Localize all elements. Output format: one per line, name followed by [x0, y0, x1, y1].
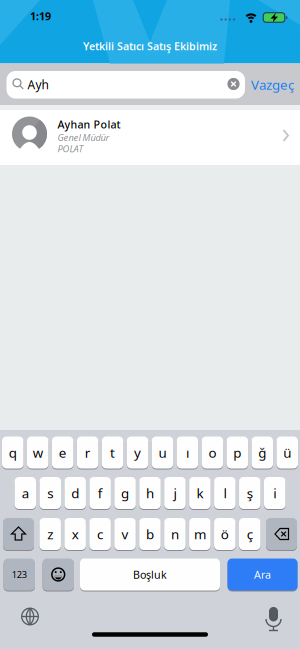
staticText: c: [97, 525, 103, 543]
button[interactable]: q: [2, 436, 24, 469]
button[interactable]: n: [164, 517, 186, 550]
button[interactable]: f: [89, 476, 111, 509]
staticText: ı: [186, 444, 189, 461]
staticText: r: [85, 444, 91, 461]
staticText: Vazgeç: [251, 76, 294, 93]
staticText: Yetkili Satıcı Satış Ekibimiz: [83, 39, 217, 53]
button[interactable]: x: [64, 517, 86, 550]
staticText: u: [158, 444, 166, 461]
button[interactable]: b: [139, 517, 161, 550]
button[interactable]: j: [164, 476, 186, 509]
staticText: n: [171, 525, 179, 543]
staticText: 1:19: [30, 9, 51, 23]
button[interactable]: ü: [276, 436, 298, 469]
staticText: w: [33, 444, 43, 461]
button[interactable]: Klavyeyi değiştir: [18, 604, 42, 628]
staticText: d: [71, 484, 79, 502]
staticText: k: [196, 484, 203, 502]
button[interactable]: l: [214, 476, 236, 509]
button[interactable]: Vazgeç: [251, 76, 294, 93]
button[interactable]: Ara: [227, 558, 297, 591]
button[interactable]: Dikte: [264, 607, 282, 633]
button[interactable]: Ayhan Polat: [0, 110, 300, 165]
staticText: ö: [221, 525, 229, 543]
staticText: l: [223, 484, 226, 502]
button[interactable]: r: [77, 436, 98, 469]
staticText: POLAT: [57, 142, 83, 155]
staticText: z: [47, 525, 53, 543]
button[interactable]: m: [189, 517, 211, 550]
button[interactable]: ğ: [251, 436, 273, 469]
staticText: ş: [247, 484, 253, 502]
staticText: y: [134, 444, 141, 461]
button[interactable]: 123: [3, 558, 35, 591]
staticText: Ara: [254, 567, 271, 582]
staticText: a: [22, 484, 29, 502]
button[interactable]: ı: [177, 436, 198, 469]
staticText: f: [98, 484, 103, 502]
button[interactable]: o: [202, 436, 223, 469]
staticText: Boşluk: [133, 567, 167, 582]
staticText: j: [173, 484, 176, 502]
button[interactable]: v: [114, 517, 136, 550]
button[interactable]: Shift: [3, 517, 34, 550]
staticText: ç: [247, 525, 253, 543]
button[interactable]: c: [89, 517, 111, 550]
button[interactable]: s: [39, 476, 61, 509]
button[interactable]: g: [114, 476, 136, 509]
button[interactable]: ç: [239, 517, 261, 550]
staticText: i: [273, 484, 276, 502]
button[interactable]: Sil: [266, 517, 297, 550]
staticText: Genel Müdür: [57, 131, 109, 144]
button[interactable]: h: [139, 476, 161, 509]
staticText: 123: [12, 568, 27, 581]
staticText: h: [146, 484, 154, 502]
button[interactable]: u: [152, 436, 173, 469]
staticText: v: [121, 525, 128, 543]
button[interactable]: w: [27, 436, 49, 469]
button[interactable]: p: [226, 436, 248, 469]
button[interactable]: Emoji: [42, 558, 74, 591]
button[interactable]: k: [189, 476, 211, 509]
button[interactable]: y: [127, 436, 148, 469]
staticText: b: [146, 525, 154, 543]
staticText: o: [208, 444, 216, 461]
button[interactable]: i: [264, 476, 286, 509]
staticText: t: [110, 444, 115, 461]
staticText: q: [9, 444, 17, 461]
staticText: Ayh: [27, 76, 48, 92]
button[interactable]: z: [39, 517, 61, 550]
button[interactable]: t: [102, 436, 123, 469]
staticText: m: [194, 525, 206, 543]
staticText: p: [233, 444, 241, 461]
staticText: ü: [283, 444, 291, 461]
button[interactable]: Metni temizle: [226, 77, 240, 91]
staticText: g: [121, 484, 129, 502]
button[interactable]: Boşluk: [80, 558, 220, 591]
button[interactable]: a: [14, 476, 36, 509]
staticText: s: [47, 484, 53, 502]
staticText: Ayhan Polat: [57, 117, 120, 131]
staticText: e: [59, 444, 67, 461]
button[interactable]: e: [52, 436, 73, 469]
staticText: ğ: [258, 444, 266, 461]
button[interactable]: d: [64, 476, 86, 509]
staticText: x: [72, 525, 79, 543]
button[interactable]: ş: [239, 476, 261, 509]
button[interactable]: ö: [214, 517, 236, 550]
